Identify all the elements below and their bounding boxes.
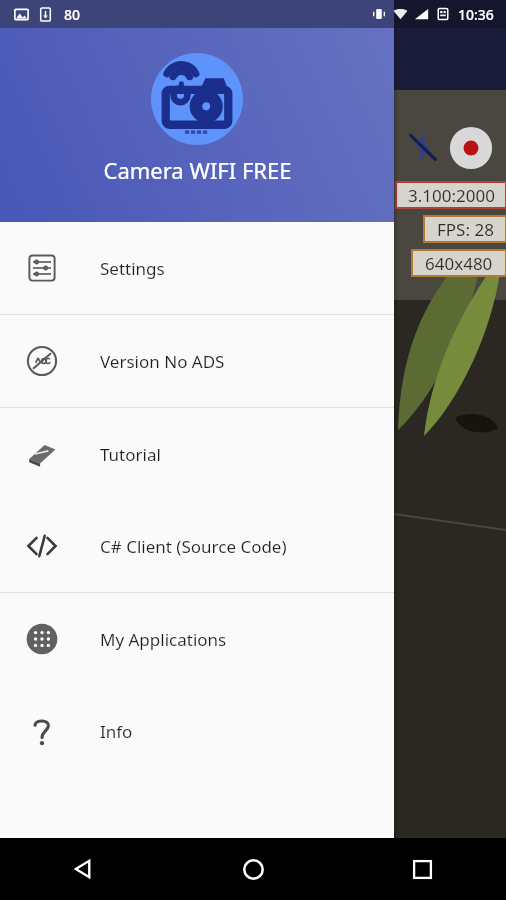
- button[interactable]: My Applications: [0, 593, 394, 685]
- staticText: 80: [64, 5, 81, 24]
- button[interactable]: Tutorial: [0, 408, 394, 500]
- button[interactable]: Flash off: [406, 130, 440, 164]
- staticText: My Applications: [100, 628, 227, 651]
- staticText: Tutorial: [100, 443, 161, 466]
- staticText: Settings: [100, 257, 165, 280]
- staticText: 3.100:2000: [408, 184, 495, 207]
- staticText: FPS: 28: [437, 218, 494, 241]
- button[interactable]: Settings: [0, 222, 394, 314]
- button[interactable]: Recent apps: [393, 840, 451, 898]
- button[interactable]: Record: [449, 126, 493, 170]
- staticText: Version No ADS: [100, 350, 225, 373]
- button[interactable]: Back: [55, 840, 113, 898]
- button[interactable]: Info: [0, 685, 394, 777]
- button[interactable]: C# Client (Source Code): [0, 500, 394, 592]
- staticText: C# Client (Source Code): [100, 535, 287, 558]
- button[interactable]: Version No ADS: [0, 315, 394, 407]
- button[interactable]: Home: [224, 840, 282, 898]
- staticText: 10:36: [458, 5, 494, 24]
- staticText: 640x480: [425, 252, 493, 275]
- staticText: Info: [100, 720, 133, 743]
- staticText: Camera WIFI FREE: [103, 155, 292, 185]
